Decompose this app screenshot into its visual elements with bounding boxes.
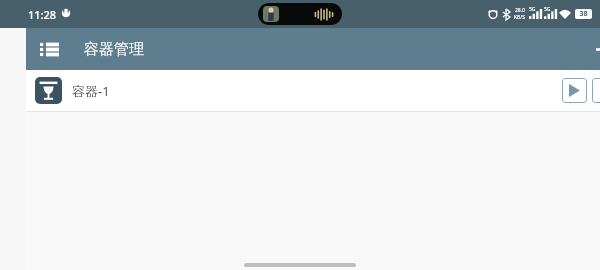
staticText: 5G — [544, 6, 551, 13]
button[interactable]: Add — [584, 28, 600, 70]
button[interactable]: Menu — [33, 33, 65, 65]
staticText: 28.0 — [515, 7, 525, 14]
button[interactable]: Start — [562, 78, 587, 103]
button[interactable]: More options — [592, 78, 600, 103]
staticText: 容器管理 — [84, 40, 144, 59]
button[interactable]: 容器-1 — [26, 70, 600, 111]
staticText: KB/S — [514, 14, 525, 21]
staticText: 5G — [529, 6, 536, 13]
staticText: 容器-1 — [72, 82, 110, 100]
staticText: 11:28 — [28, 7, 57, 22]
staticText: 38 — [579, 9, 588, 19]
